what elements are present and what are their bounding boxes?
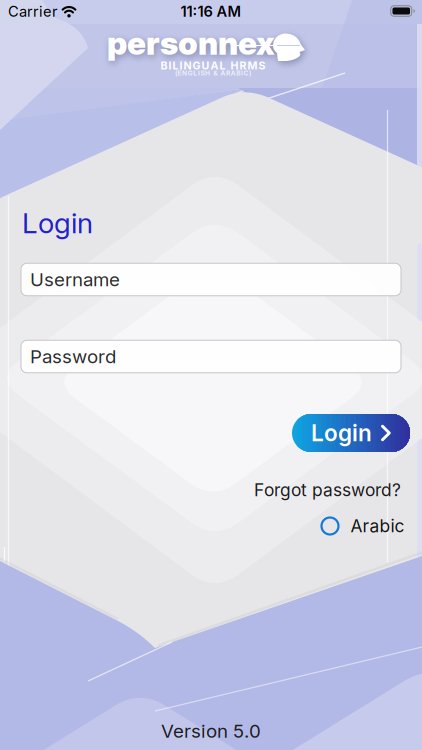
staticText: (ENGLISH & ARABIC) — [175, 69, 251, 77]
button[interactable]: Arabic — [321, 516, 404, 536]
staticText: Forgot password? — [254, 480, 401, 500]
staticText: Password — [30, 345, 116, 367]
staticText: personnex — [107, 24, 275, 62]
staticText: Username — [30, 268, 120, 290]
staticText: Login — [311, 420, 372, 446]
button[interactable]: Username — [21, 263, 401, 296]
staticText: Version 5.0 — [161, 720, 261, 742]
staticText: Arabic — [350, 516, 404, 536]
button[interactable]: Password — [21, 340, 401, 373]
button[interactable]: Login — [292, 414, 410, 452]
staticText: Carrier — [8, 3, 58, 20]
staticText: BILINGUAL HRMS — [160, 59, 265, 72]
staticText: 11:16 AM — [180, 3, 241, 20]
button[interactable]: Forgot password? — [201, 480, 401, 500]
staticText: Login — [22, 206, 93, 239]
